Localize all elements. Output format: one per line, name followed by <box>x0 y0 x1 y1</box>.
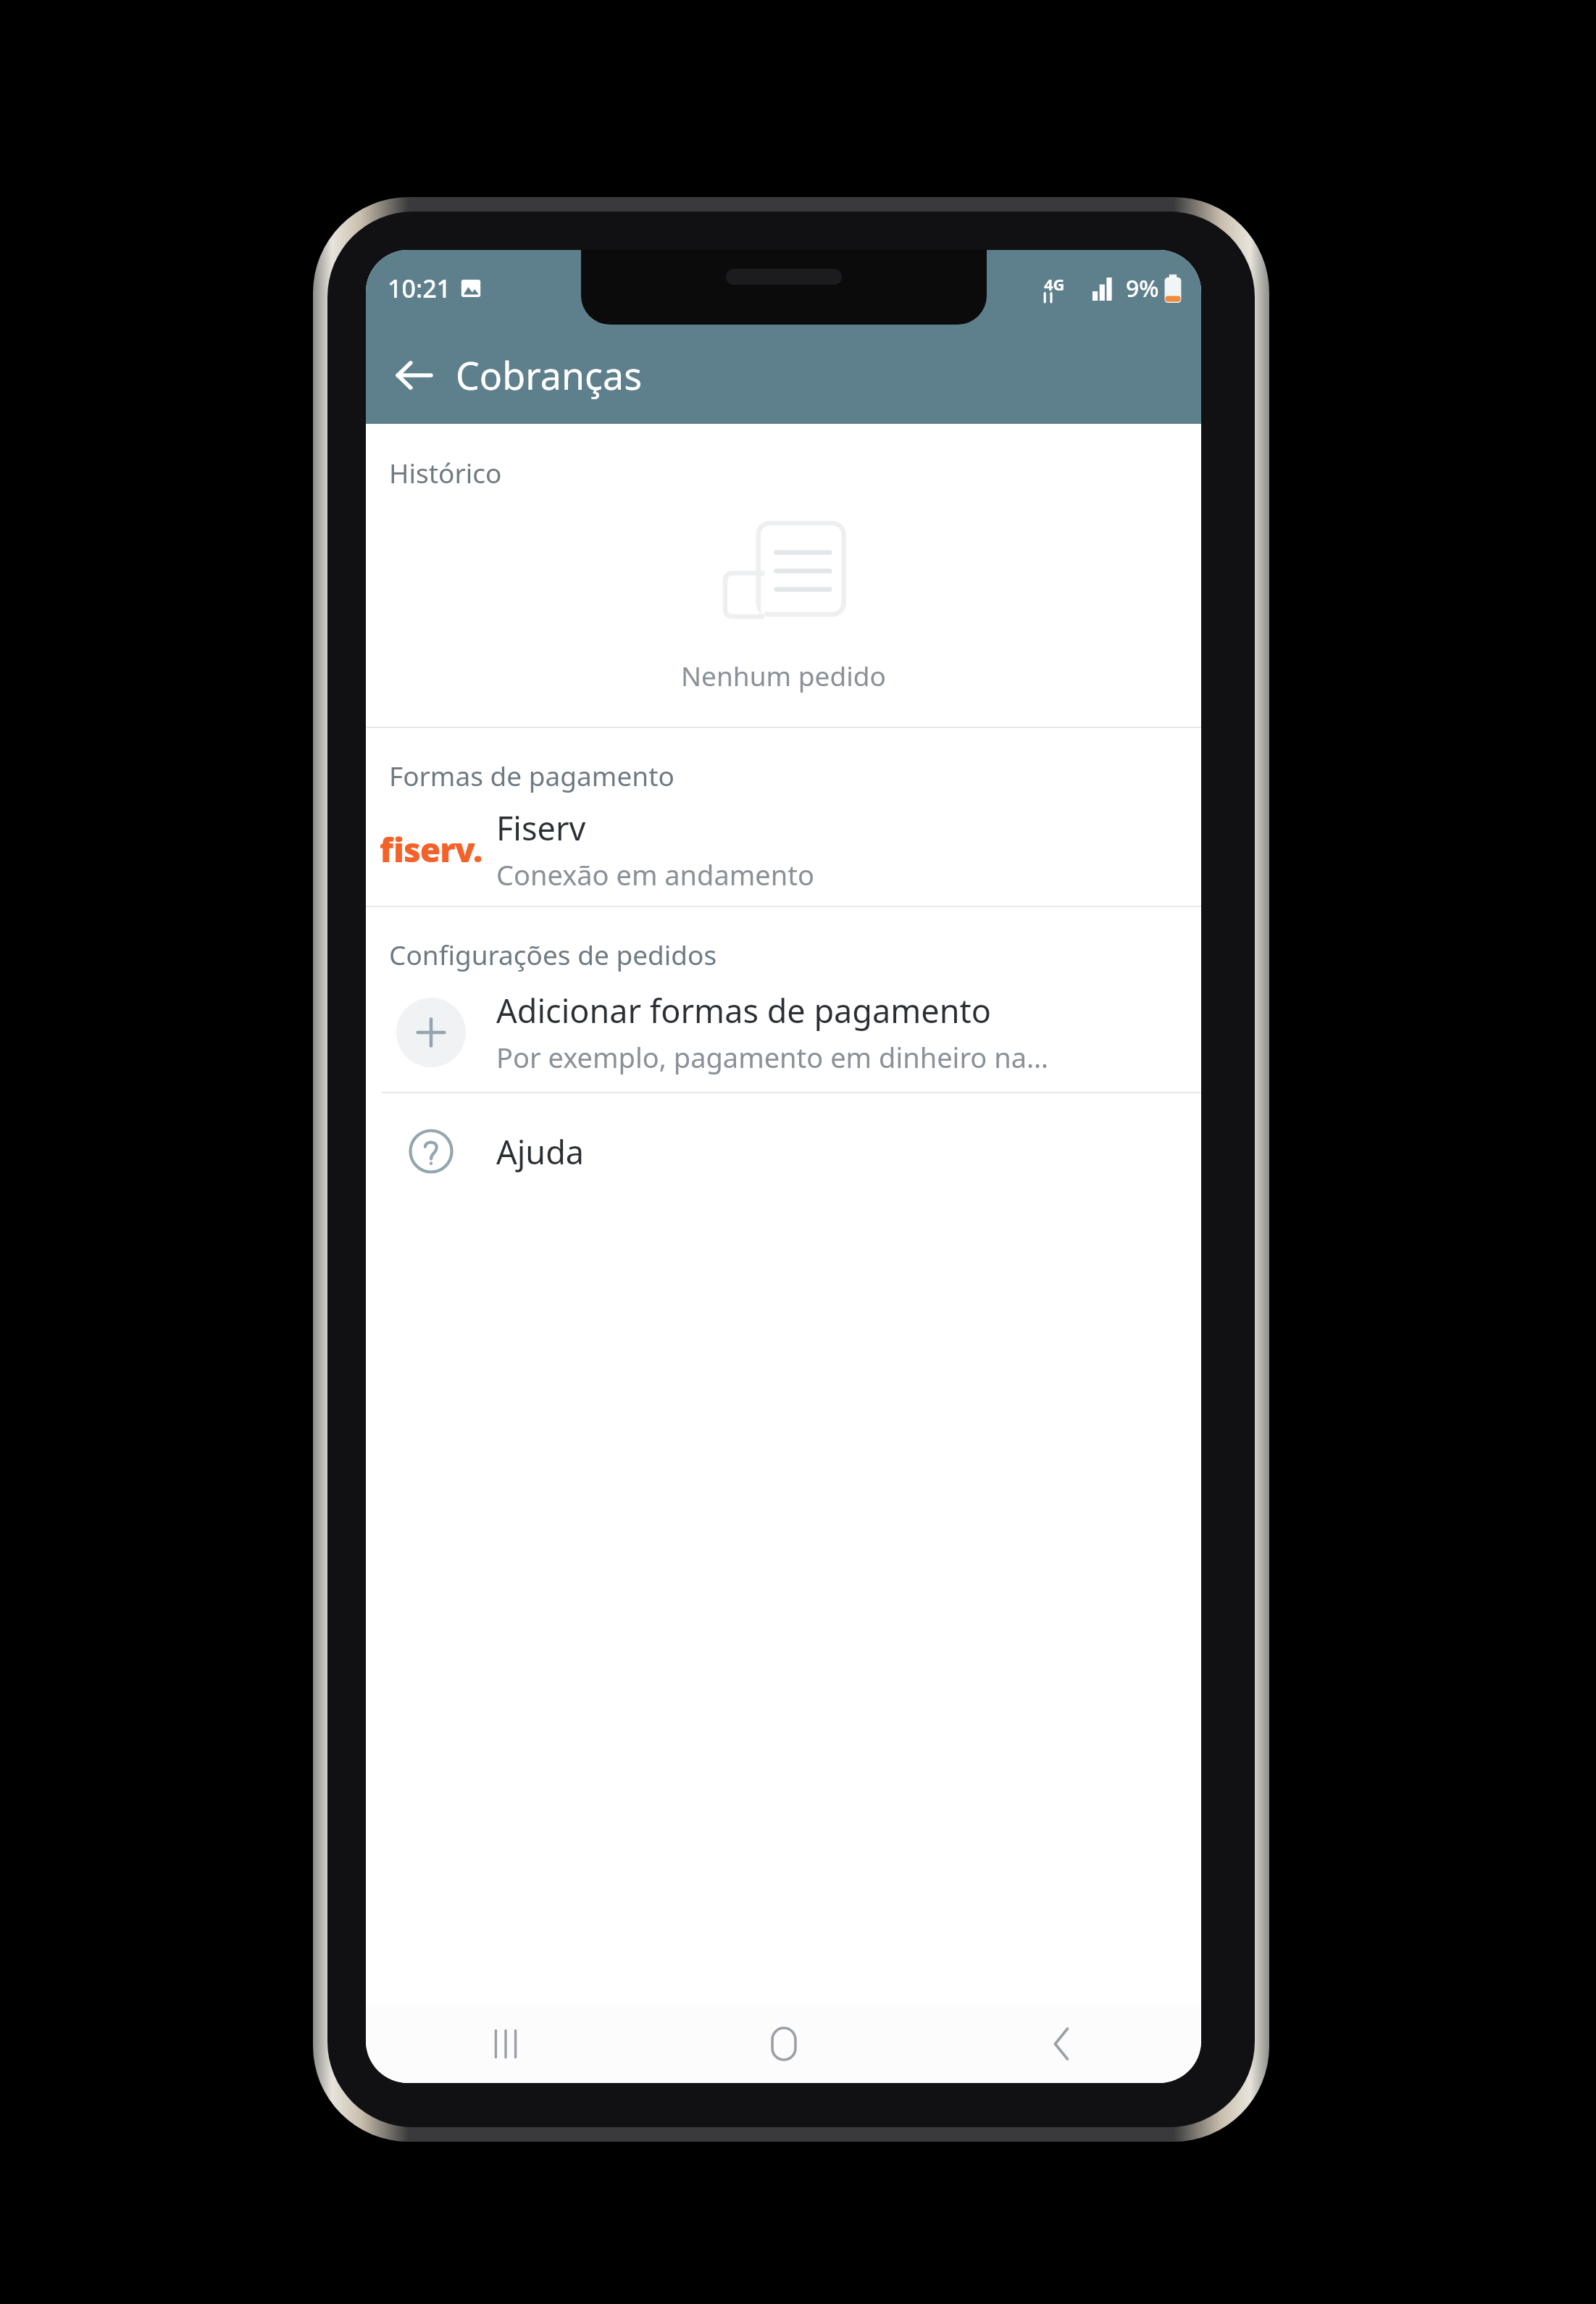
staticText: Histórico <box>389 454 502 491</box>
staticText: 10:21 <box>388 272 451 305</box>
staticText: Fiserv <box>496 806 586 850</box>
staticText: Conexão em andamento <box>496 856 814 893</box>
button[interactable]: Voltar <box>380 342 447 409</box>
button[interactable]: Adicionar formas de pagamento <box>366 972 1201 1092</box>
button[interactable]: Ajuda <box>366 1093 1201 1209</box>
staticText: Cobranças <box>456 349 643 401</box>
staticText: fiserv. <box>380 827 482 872</box>
button[interactable]: fiserv. <box>366 793 1201 906</box>
staticText: Ajuda <box>496 1130 585 1174</box>
staticText: 9% <box>1126 272 1159 304</box>
button[interactable]: Início <box>645 2005 923 2083</box>
staticText: Formas de pagamento <box>389 757 674 793</box>
staticText: Configurações de pedidos <box>389 936 717 972</box>
staticText: Adicionar formas de pagamento <box>496 988 992 1032</box>
staticText: Nenhum pedido <box>681 657 886 693</box>
staticText: 4G <box>1044 273 1065 295</box>
staticText: Por exemplo, pagamento em dinheiro na… <box>496 1038 1049 1076</box>
button[interactable]: Voltar <box>923 2005 1201 2083</box>
button[interactable]: Recentes <box>366 2005 645 2083</box>
